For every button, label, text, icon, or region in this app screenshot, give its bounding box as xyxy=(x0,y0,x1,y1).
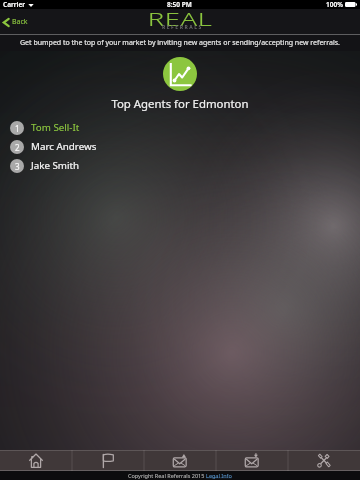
staticText: 8:50 PM xyxy=(167,0,192,9)
button[interactable]: Back xyxy=(0,9,34,35)
staticText: REFERRALS xyxy=(162,24,203,31)
staticText: Carrier xyxy=(3,0,26,9)
button[interactable]: Home xyxy=(0,450,72,471)
button[interactable]: Listings xyxy=(72,450,144,471)
staticText: Jake Smith xyxy=(31,159,80,172)
staticText: Get bumped to the top of your market by … xyxy=(20,38,340,48)
button[interactable]: 2 xyxy=(0,137,360,156)
staticText: Tom Sell-It xyxy=(31,121,80,134)
staticText: Marc Andrews xyxy=(31,140,97,153)
button[interactable]: Sent referrals xyxy=(144,450,216,471)
staticText: Copyright Real Referrals 2015 xyxy=(128,472,206,479)
staticText: Top Agents for Edmonton xyxy=(0,96,360,112)
button[interactable]: Legal Info xyxy=(206,472,232,479)
staticText: REAL xyxy=(148,7,213,32)
staticText: 1 xyxy=(15,123,20,134)
staticText: Back xyxy=(12,17,28,27)
staticText: 100% xyxy=(326,0,343,9)
button[interactable]: 3 xyxy=(0,156,360,175)
staticText: 3 xyxy=(15,161,20,172)
button[interactable]: 1 xyxy=(0,118,360,137)
button[interactable]: Top agents chart xyxy=(163,57,197,91)
button[interactable]: Received referrals xyxy=(216,450,288,471)
staticText: 2 xyxy=(15,142,20,153)
button[interactable]: Tools xyxy=(288,450,360,471)
